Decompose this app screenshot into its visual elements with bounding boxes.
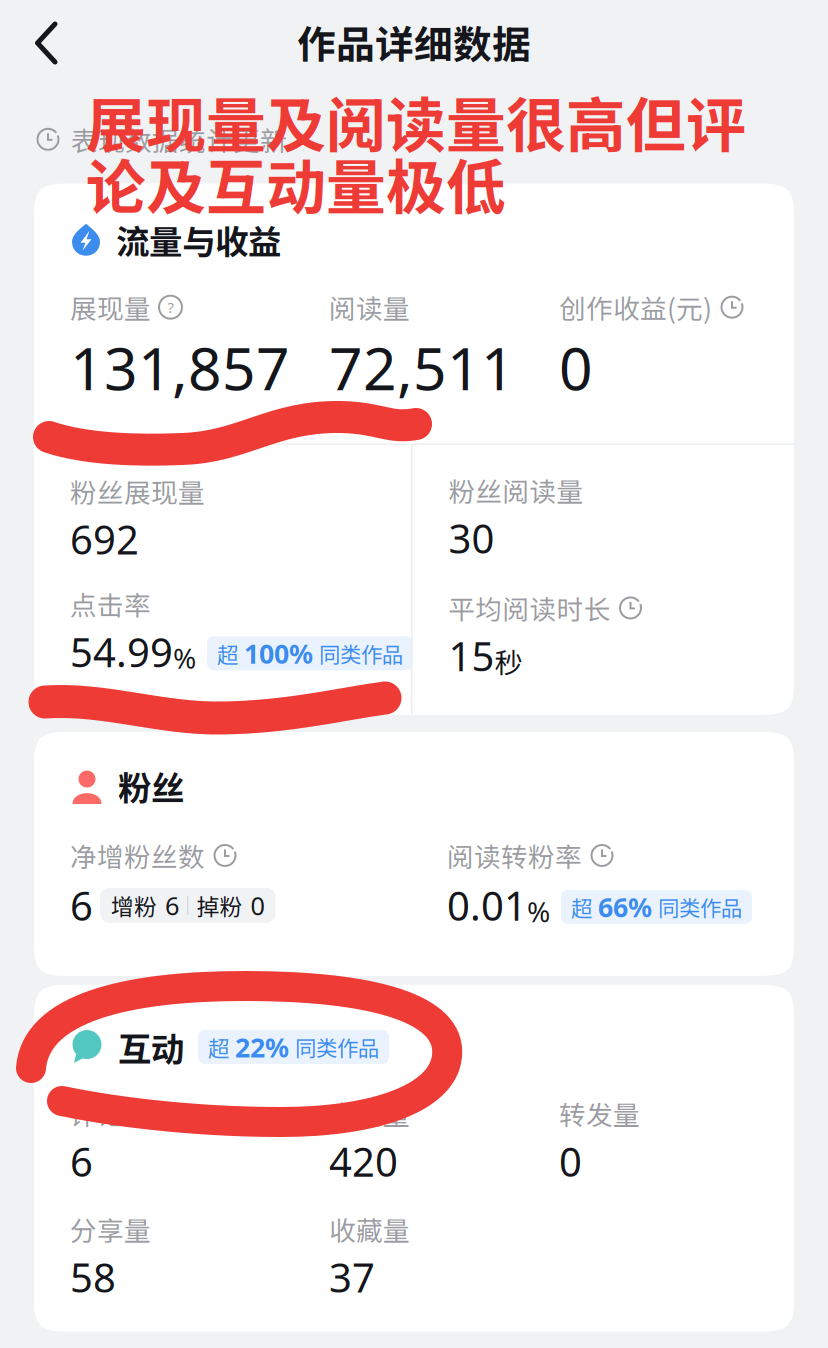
staticText: 阅读转粉率 <box>447 836 582 875</box>
staticText: 692 <box>70 512 139 566</box>
staticText: 6 <box>70 879 93 932</box>
staticText: 流量与收益 <box>116 216 281 264</box>
staticText: 评论量 <box>70 1094 151 1133</box>
staticText: % <box>527 893 550 930</box>
staticText: 54.99 <box>70 625 173 678</box>
staticText: 66% <box>598 889 652 925</box>
staticText: 同类作品 <box>295 1032 379 1062</box>
staticText: 转发量 <box>559 1094 640 1133</box>
staticText: 58 <box>70 1250 116 1304</box>
staticText: % <box>173 639 196 676</box>
staticText: 同类作品 <box>658 891 742 922</box>
staticText: 点赞量 <box>329 1094 410 1133</box>
staticText: 420 <box>329 1135 398 1188</box>
staticText: 展现量 <box>70 288 151 326</box>
staticText: 粉丝 <box>118 762 184 810</box>
staticText: 同类作品 <box>319 638 403 669</box>
staticText: 净增粉丝数 <box>70 836 205 875</box>
staticText: 0.01 <box>447 879 527 932</box>
staticText: 72,511 <box>329 328 515 406</box>
staticText: 互动 <box>118 1023 184 1071</box>
staticText: 论及互动量极低 <box>86 140 506 226</box>
staticText: 收藏量 <box>329 1210 410 1248</box>
staticText: 秒 <box>494 641 522 681</box>
staticText: 6 <box>165 888 179 922</box>
staticText: 超 <box>571 891 592 922</box>
staticText: 37 <box>329 1250 375 1304</box>
staticText: 0 <box>250 888 264 922</box>
staticText: 平均阅读时长 <box>448 589 610 627</box>
staticText: 131,857 <box>70 328 290 406</box>
staticText: 作品详细数据 <box>297 14 531 70</box>
staticText: 展现量及阅读量很高但评 <box>86 78 746 164</box>
staticText: 超 <box>217 638 238 669</box>
staticText: 粉丝阅读量 <box>448 471 583 509</box>
staticText: 粉丝展现量 <box>70 472 205 510</box>
staticText: 创作收益(元) <box>559 288 712 326</box>
staticText: 15 <box>448 629 494 682</box>
staticText: 0 <box>559 1135 582 1188</box>
staticText: 6 <box>70 1135 93 1188</box>
staticText: 30 <box>448 511 494 565</box>
staticText: ? <box>167 297 173 317</box>
staticText: 0 <box>559 328 593 406</box>
staticText: 点击率 <box>70 585 151 623</box>
staticText: 100% <box>244 636 313 671</box>
staticText: 阅读量 <box>329 288 410 326</box>
staticText: 表现数据统计更新 <box>71 120 287 159</box>
staticText: 分享量 <box>70 1210 151 1248</box>
staticText: 22% <box>235 1029 289 1065</box>
staticText: 超 <box>208 1032 229 1062</box>
staticText: 增粉 <box>111 889 157 922</box>
staticText: 掉粉 <box>196 889 242 922</box>
button[interactable]: Back <box>0 10 84 84</box>
